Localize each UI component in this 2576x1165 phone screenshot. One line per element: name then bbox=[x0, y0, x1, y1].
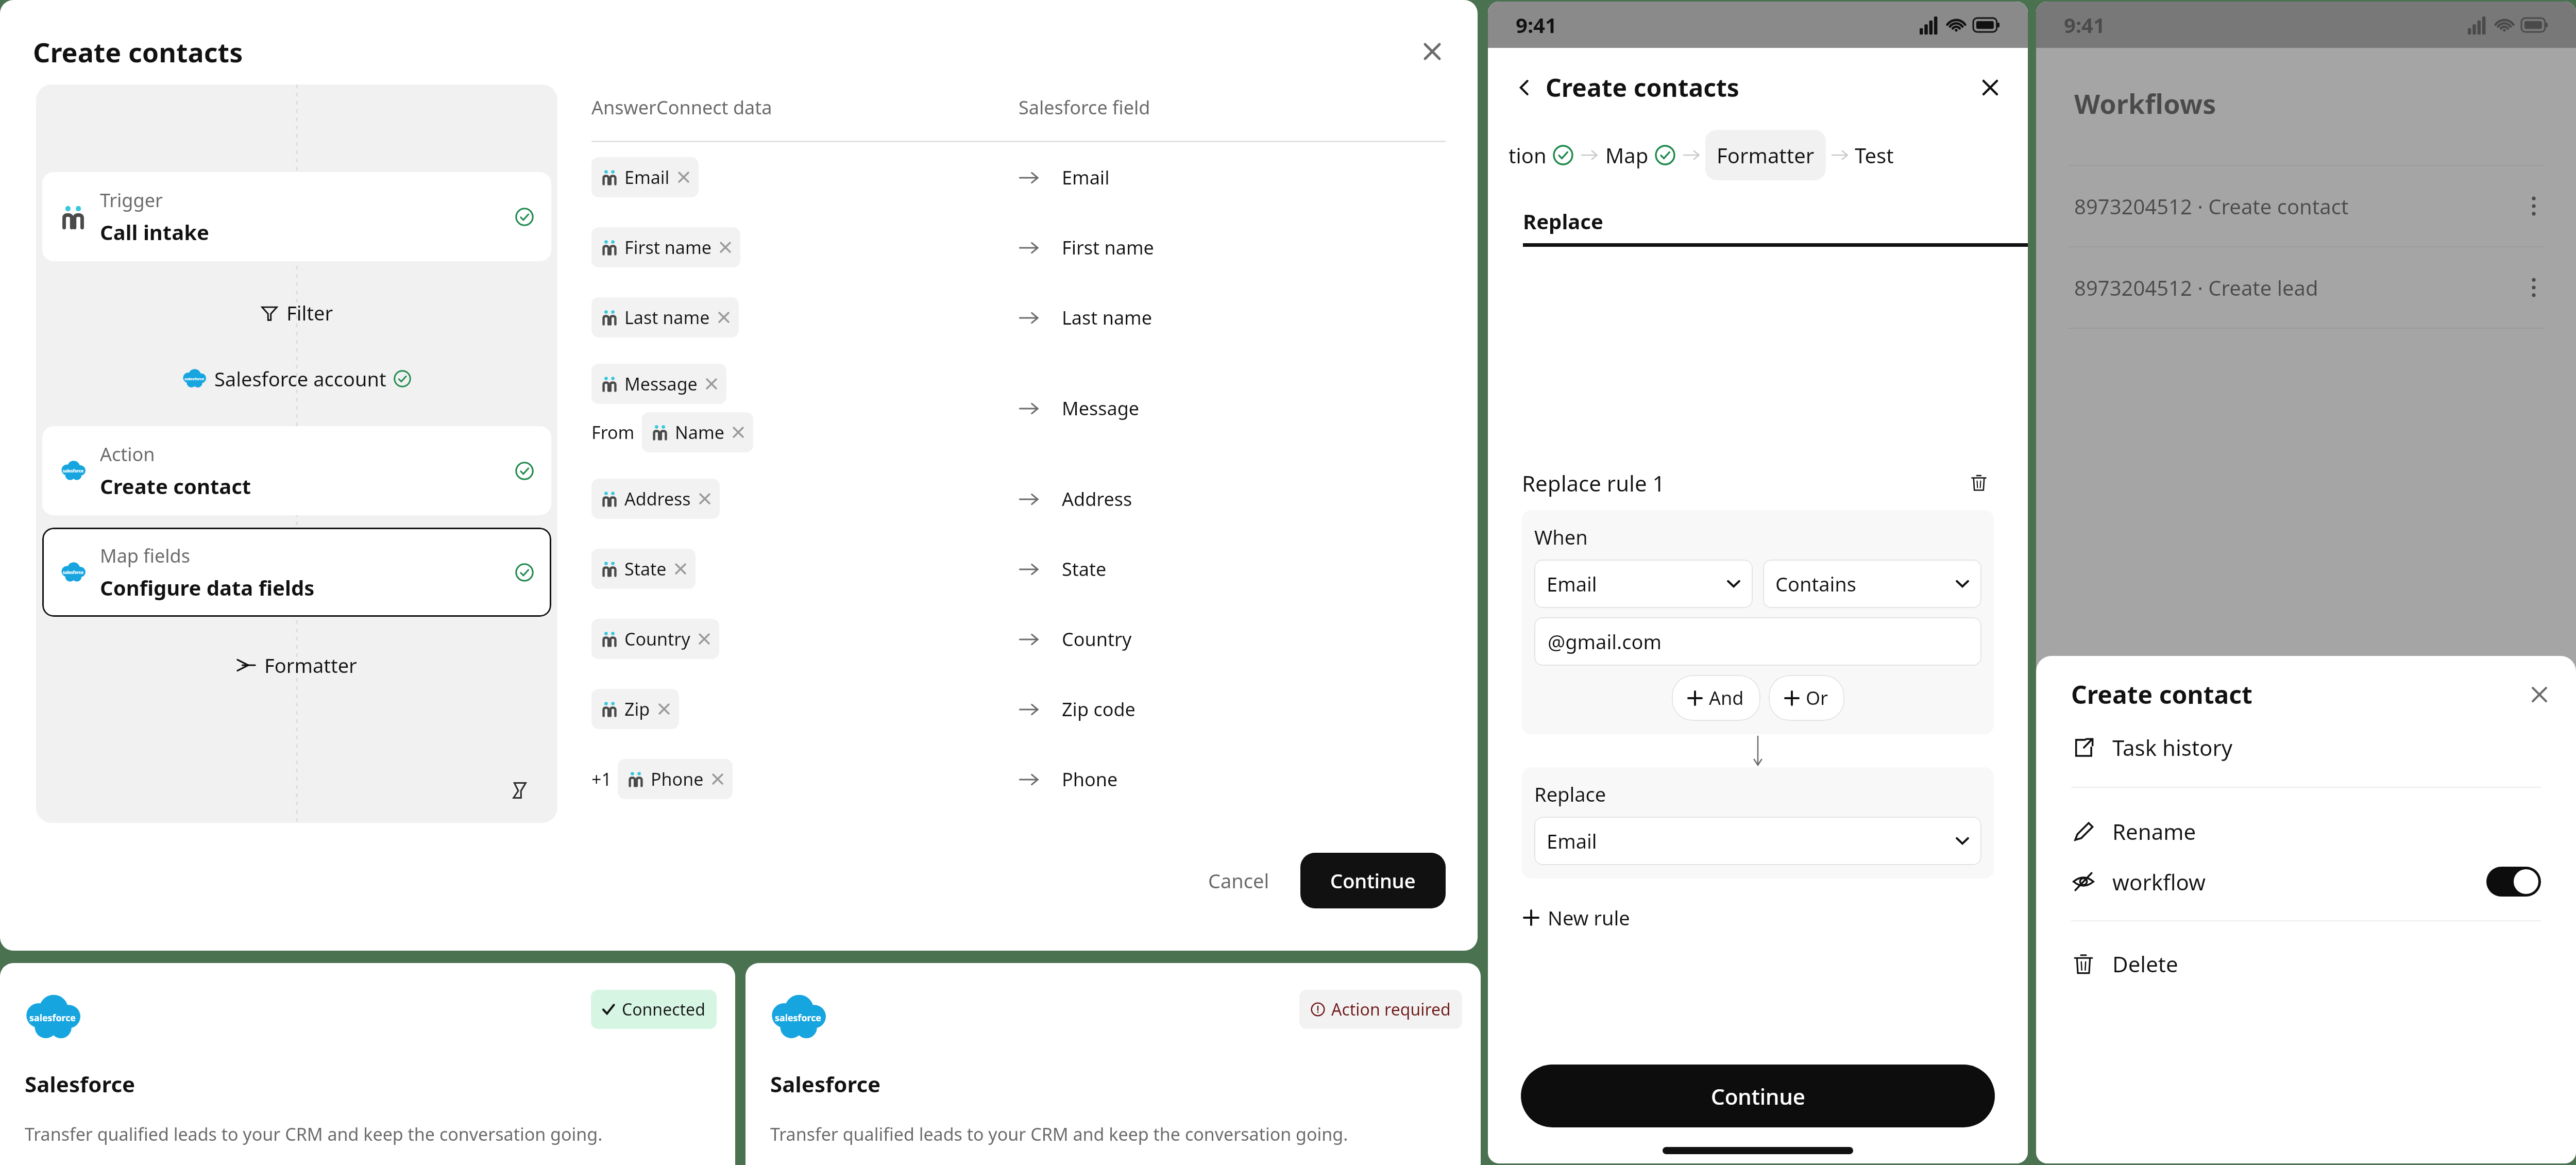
staticText: tion bbox=[1509, 141, 1547, 169]
staticText: Country bbox=[624, 627, 690, 651]
button[interactable]: Country bbox=[591, 619, 719, 659]
button[interactable]: Filter bbox=[36, 299, 557, 326]
staticText: Name bbox=[675, 420, 724, 444]
button[interactable]: workflow bbox=[2036, 867, 2576, 897]
staticText: Replace rule 1 bbox=[1522, 468, 1665, 498]
staticText: Salesforce bbox=[770, 1069, 881, 1099]
staticText: New rule bbox=[1548, 904, 1630, 931]
staticText: Phone bbox=[1062, 767, 1118, 792]
button[interactable]: 8973204512 · Create lead bbox=[2036, 247, 2576, 328]
button[interactable]: Name bbox=[642, 412, 753, 452]
button[interactable]: And bbox=[1672, 675, 1760, 721]
staticText: salesforce bbox=[29, 1011, 76, 1024]
staticText: @gmail.com bbox=[1548, 628, 1662, 655]
button[interactable]: Continue bbox=[1521, 1065, 1995, 1127]
staticText: Map fields bbox=[100, 543, 190, 568]
staticText: workflow bbox=[2112, 867, 2206, 897]
button[interactable]: Task history bbox=[2036, 733, 2576, 762]
button[interactable]: Replace bbox=[1523, 207, 2028, 247]
staticText: salesforce bbox=[63, 570, 83, 576]
staticText: Last name bbox=[624, 306, 710, 329]
button[interactable]: Toggle workflow bbox=[2486, 867, 2541, 897]
button[interactable]: Zip bbox=[591, 689, 679, 729]
button[interactable]: Delete bbox=[2036, 949, 2576, 978]
button[interactable]: Phone bbox=[618, 759, 733, 799]
button[interactable]: salesforce bbox=[42, 528, 551, 617]
staticText: Email bbox=[1062, 165, 1110, 190]
staticText: Transfer qualified leads to your CRM and… bbox=[770, 1122, 1348, 1146]
staticText: Task history bbox=[2112, 733, 2233, 762]
staticText: Address bbox=[624, 487, 691, 511]
staticText: Create contacts bbox=[1546, 71, 1739, 104]
button[interactable]: Formatter bbox=[36, 652, 557, 679]
staticText: AnswerConnect data bbox=[591, 95, 1019, 120]
staticText: Email bbox=[1547, 570, 1597, 597]
staticText: Email bbox=[1547, 828, 1597, 854]
button[interactable]: Rename bbox=[2036, 817, 2576, 846]
button[interactable]: Trigger bbox=[42, 172, 551, 261]
button[interactable]: Delete rule bbox=[1964, 468, 1994, 498]
staticText: State bbox=[1062, 556, 1107, 582]
button[interactable]: salesforce bbox=[745, 963, 1481, 1165]
staticText: Create contact bbox=[2071, 678, 2252, 711]
button[interactable]: Address bbox=[591, 479, 720, 519]
button[interactable]: Back bbox=[1511, 74, 1538, 102]
staticText: Message bbox=[1062, 396, 1140, 421]
button[interactable]: Email bbox=[591, 157, 699, 197]
staticText: Salesforce bbox=[25, 1069, 135, 1099]
staticText: Test bbox=[1855, 141, 1894, 169]
staticText: Filter bbox=[286, 299, 333, 326]
button[interactable]: More options bbox=[2519, 192, 2548, 221]
staticText: Email bbox=[624, 165, 670, 189]
staticText: Configure data fields bbox=[100, 573, 315, 601]
staticText: Replace bbox=[1534, 781, 1606, 807]
button[interactable]: New rule bbox=[1522, 900, 1632, 935]
staticText: Cancel bbox=[1208, 867, 1269, 894]
button[interactable]: Cancel bbox=[1191, 856, 1287, 905]
staticText: Phone bbox=[651, 767, 704, 791]
button[interactable]: First name bbox=[591, 227, 740, 267]
button[interactable]: salesforce bbox=[42, 426, 551, 515]
staticText: Create contact bbox=[100, 472, 251, 500]
button[interactable]: Last name bbox=[591, 297, 739, 337]
button[interactable]: Contains bbox=[1763, 560, 1981, 608]
staticText: From bbox=[591, 420, 635, 444]
staticText: Create contacts bbox=[33, 33, 243, 70]
button[interactable]: salesforce bbox=[0, 963, 735, 1165]
staticText: +1 bbox=[591, 767, 612, 791]
staticText: First name bbox=[624, 235, 711, 259]
staticText: Trigger bbox=[100, 188, 163, 213]
button[interactable]: Close bbox=[1413, 32, 1452, 71]
button[interactable]: Email bbox=[1534, 817, 1981, 865]
button[interactable]: 8973204512 · Create contact bbox=[2036, 166, 2576, 246]
staticText: Rename bbox=[2112, 817, 2196, 846]
staticText: salesforce bbox=[184, 376, 205, 381]
button[interactable]: More options bbox=[2519, 273, 2548, 302]
staticText: 8973204512 · Create contact bbox=[2074, 192, 2349, 220]
staticText: Action bbox=[100, 442, 155, 467]
button[interactable]: Close sheet bbox=[2524, 680, 2554, 710]
staticText: State bbox=[624, 557, 667, 581]
button[interactable]: Message bbox=[591, 364, 726, 404]
staticText: Delete bbox=[2112, 949, 2178, 978]
staticText: Last name bbox=[1062, 305, 1153, 330]
button[interactable]: Close bbox=[1975, 73, 2005, 103]
staticText: Address bbox=[1062, 486, 1132, 512]
button[interactable]: salesforce bbox=[36, 365, 557, 392]
staticText: 8973204512 · Create lead bbox=[2074, 274, 2318, 301]
staticText: Action required bbox=[1331, 998, 1451, 1021]
button[interactable]: @gmail.com bbox=[1534, 617, 1981, 666]
staticText: Zip code bbox=[1062, 697, 1136, 722]
button[interactable]: State bbox=[591, 549, 696, 589]
staticText: Transfer qualified leads to your CRM and… bbox=[25, 1122, 603, 1146]
staticText: Contains bbox=[1775, 570, 1857, 597]
button[interactable]: Email bbox=[1534, 560, 1753, 608]
button[interactable]: Continue bbox=[1300, 853, 1446, 908]
staticText: Salesforce account bbox=[214, 365, 386, 392]
staticText: Zip bbox=[624, 697, 650, 721]
staticText: Formatter bbox=[1717, 141, 1815, 169]
staticText: Message bbox=[624, 372, 698, 396]
staticText: And bbox=[1709, 685, 1744, 711]
button[interactable]: Formatter bbox=[1705, 130, 1826, 180]
button[interactable]: Or bbox=[1769, 675, 1844, 721]
